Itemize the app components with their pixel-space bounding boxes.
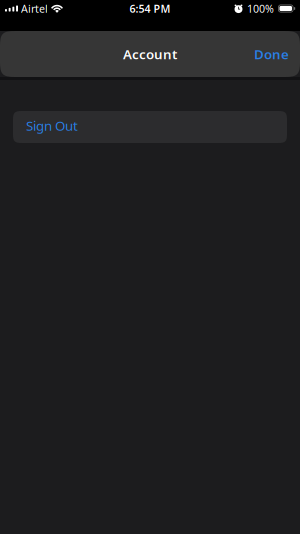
button[interactable]: Done <box>248 36 295 72</box>
button[interactable]: Sign Out <box>13 111 287 143</box>
staticText: Sign Out <box>26 117 78 134</box>
staticText: 6:54 PM <box>129 1 170 16</box>
staticText: 100% <box>247 1 274 16</box>
staticText: Account <box>123 45 177 63</box>
staticText: Done <box>254 45 289 63</box>
staticText: Airtel <box>21 1 48 16</box>
